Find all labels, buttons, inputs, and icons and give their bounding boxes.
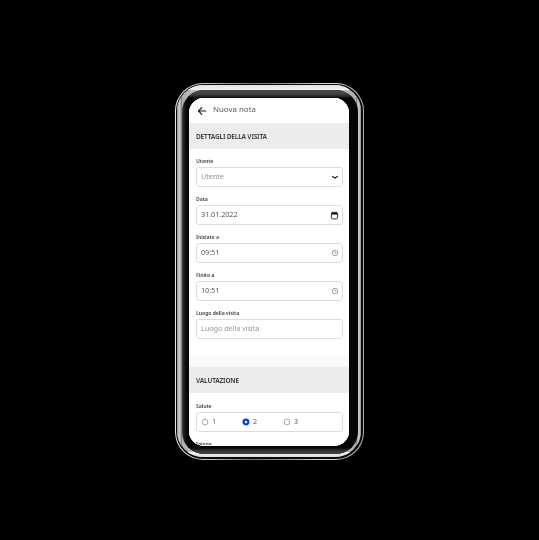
- staticText: Nuova nota: [213, 104, 256, 115]
- button[interactable]: 31.01.2022: [196, 205, 343, 225]
- staticText: Igiene: [196, 440, 212, 445]
- button[interactable]: Utente: [196, 167, 343, 187]
- staticText: 2: [253, 416, 258, 426]
- staticText: 09:51: [201, 247, 332, 257]
- button[interactable]: 3: [283, 412, 324, 432]
- button[interactable]: Luogo della visita: [196, 319, 343, 339]
- button[interactable]: Back: [194, 103, 210, 119]
- staticText: VALUTAZIONE: [196, 376, 239, 385]
- staticText: 10:51: [201, 285, 332, 295]
- button[interactable]: 09:51: [196, 243, 343, 263]
- staticText: 31.01.2022: [201, 209, 331, 219]
- button[interactable]: 2: [242, 412, 283, 432]
- staticText: DETTAGLI DELLA VISITA: [196, 132, 267, 141]
- staticText: Data: [196, 195, 208, 202]
- staticText: 3: [294, 416, 299, 426]
- button[interactable]: 1: [201, 412, 242, 432]
- staticText: Utente: [196, 157, 214, 164]
- staticText: Salute: [196, 402, 212, 409]
- staticText: Luogo della visita: [201, 323, 338, 333]
- button[interactable]: 10:51: [196, 281, 343, 301]
- staticText: Utente: [201, 171, 332, 181]
- staticText: Finito a: [196, 271, 215, 278]
- staticText: Iniziato a: [196, 233, 219, 240]
- staticText: Luogo della visita: [196, 309, 240, 316]
- staticText: 1: [212, 416, 217, 426]
